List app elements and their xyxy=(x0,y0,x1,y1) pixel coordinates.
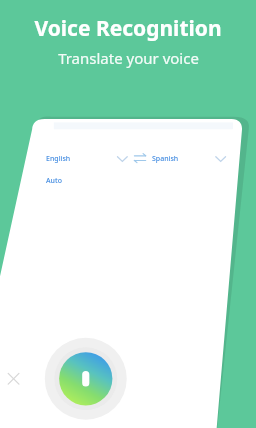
staticText: Voice Recognition xyxy=(34,14,222,43)
staticText: Spanish xyxy=(152,154,179,164)
staticText: English xyxy=(46,154,71,164)
button[interactable]: Spanish xyxy=(152,150,226,168)
staticText: Auto xyxy=(46,176,62,186)
button[interactable]: Swap languages xyxy=(131,152,147,168)
staticText: Translate your voice xyxy=(58,48,199,68)
button[interactable]: English xyxy=(46,150,116,168)
button[interactable]: Close xyxy=(3,367,25,389)
button[interactable]: Auto xyxy=(46,173,86,189)
button[interactable]: Start voice recording xyxy=(45,338,127,420)
